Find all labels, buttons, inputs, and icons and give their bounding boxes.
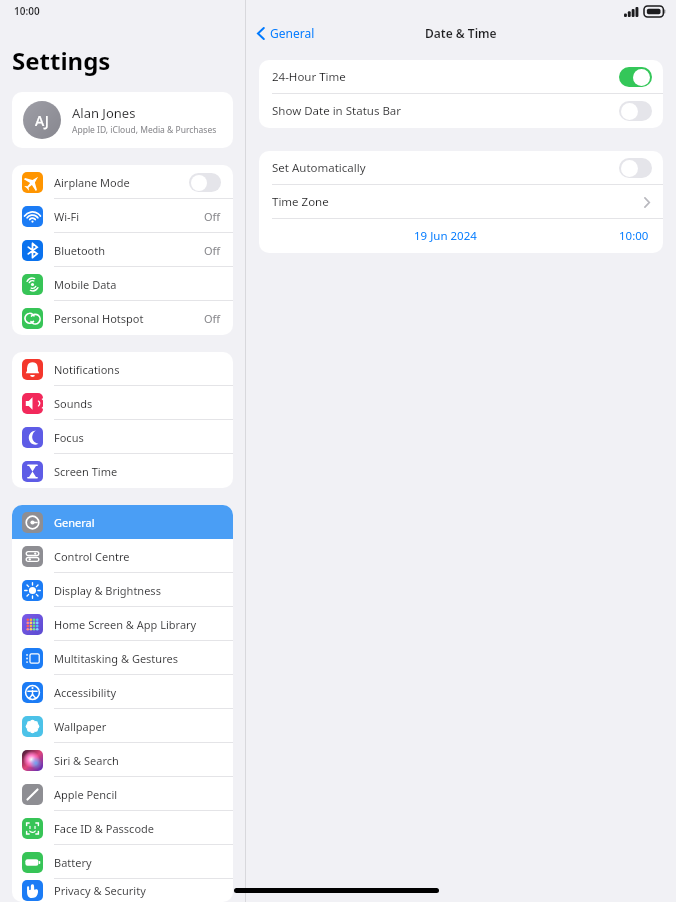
button[interactable]: Mobile Data — [12, 267, 233, 301]
button[interactable]: Notifications — [12, 352, 233, 386]
staticText: 10:00 — [14, 4, 40, 18]
button[interactable]: Show Date in Status Bar — [259, 94, 663, 128]
button[interactable]: Display & Brightness — [12, 573, 233, 607]
staticText: 24-Hour Time — [272, 69, 346, 85]
button[interactable]: Face ID & Passcode — [12, 811, 233, 845]
staticText: Multitasking & Gestures — [54, 651, 178, 666]
button[interactable]: Focus — [12, 420, 233, 454]
button[interactable]: Airplane Mode — [12, 165, 233, 199]
staticText: Time Zone — [272, 194, 329, 210]
button[interactable]: Bluetooth — [12, 233, 233, 267]
staticText: Home Screen & App Library — [54, 617, 197, 632]
staticText: Face ID & Passcode — [54, 821, 155, 836]
staticText: Off — [204, 209, 221, 224]
staticText: Battery — [54, 855, 92, 870]
staticText: Show Date in Status Bar — [272, 103, 402, 119]
button[interactable]: General — [254, 23, 318, 43]
staticText: Control Centre — [54, 549, 130, 564]
staticText: Sounds — [54, 396, 93, 411]
button[interactable]: Set Automatically — [259, 151, 663, 185]
button[interactable]: Personal Hotspot — [12, 301, 233, 335]
button[interactable]: General — [12, 505, 233, 539]
button[interactable]: Multitasking & Gestures — [12, 641, 233, 675]
button[interactable]: Screen Time — [12, 454, 233, 488]
staticText: Settings — [12, 44, 111, 77]
button[interactable]: Home Screen & App Library — [12, 607, 233, 641]
staticText: 19 Jun 2024 — [414, 228, 477, 244]
button[interactable]: Sounds — [12, 386, 233, 420]
staticText: Apple Pencil — [54, 787, 118, 802]
staticText: Apple ID, iCloud, Media & Purchases — [72, 124, 217, 136]
staticText: Airplane Mode — [54, 175, 130, 190]
staticText: Off — [204, 311, 221, 326]
button[interactable]: AJ — [12, 92, 233, 148]
button[interactable]: Toggle — [619, 101, 652, 121]
staticText: Wallpaper — [54, 719, 107, 734]
staticText: General — [270, 25, 315, 41]
button[interactable]: Siri & Search — [12, 743, 233, 777]
staticText: Off — [204, 243, 221, 258]
button[interactable]: Accessibility — [12, 675, 233, 709]
staticText: Wi-Fi — [54, 209, 80, 224]
staticText: Mobile Data — [54, 277, 117, 292]
button[interactable]: Privacy & Security — [12, 879, 233, 902]
staticText: Siri & Search — [54, 753, 119, 768]
staticText: AJ — [35, 111, 49, 130]
button[interactable]: Battery — [12, 845, 233, 879]
staticText: Personal Hotspot — [54, 311, 144, 326]
button[interactable]: Wi-Fi — [12, 199, 233, 233]
staticText: Display & Brightness — [54, 583, 161, 598]
staticText: General — [54, 515, 95, 530]
staticText: Notifications — [54, 362, 120, 377]
button[interactable]: 19 Jun 2024 — [259, 219, 663, 253]
staticText: Alan Jones — [72, 104, 136, 122]
staticText: Privacy & Security — [54, 883, 146, 898]
button[interactable]: Toggle — [619, 67, 652, 87]
button[interactable]: Apple Pencil — [12, 777, 233, 811]
button[interactable]: 24-Hour Time — [259, 60, 663, 94]
button[interactable]: Control Centre — [12, 539, 233, 573]
staticText: Focus — [54, 430, 84, 445]
button[interactable]: Toggle — [619, 158, 652, 178]
staticText: Screen Time — [54, 464, 118, 479]
button[interactable]: Toggle — [189, 173, 221, 192]
button[interactable]: Wallpaper — [12, 709, 233, 743]
staticText: Bluetooth — [54, 243, 106, 258]
button[interactable]: Time Zone — [259, 185, 663, 219]
staticText: Date & Time — [425, 25, 497, 41]
staticText: Set Automatically — [272, 160, 366, 176]
staticText: Accessibility — [54, 685, 117, 700]
staticText: 10:00 — [619, 228, 649, 244]
